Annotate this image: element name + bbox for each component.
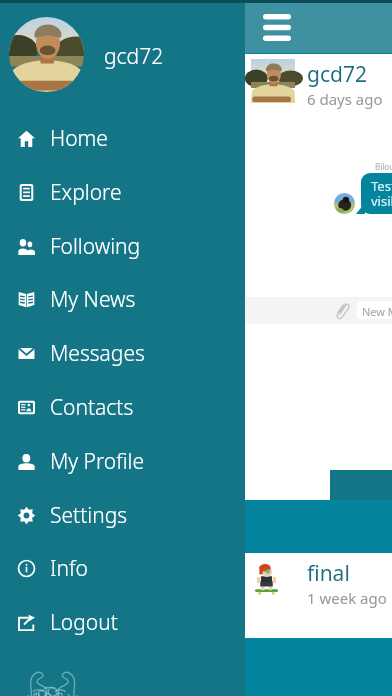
- button[interactable]: Open navigation menu: [256, 6, 298, 48]
- button[interactable]: Logout: [0, 596, 245, 648]
- staticText: Settings: [50, 501, 128, 530]
- button[interactable]: gcd72: [245, 54, 392, 500]
- staticText: gcd72: [104, 42, 164, 71]
- button[interactable]: New M: [357, 301, 392, 319]
- staticText: Following: [50, 232, 141, 261]
- staticText: New M: [362, 304, 392, 319]
- button[interactable]: Settings: [0, 489, 245, 541]
- staticText: Info: [50, 554, 88, 583]
- button[interactable]: Home: [0, 112, 245, 164]
- staticText: Explore: [50, 178, 122, 207]
- button[interactable]: My Profile: [0, 435, 245, 487]
- staticText: Bilou: [375, 161, 392, 172]
- staticText: Logout: [50, 608, 118, 637]
- button[interactable]: Contacts: [0, 381, 245, 433]
- button[interactable]: Info: [0, 542, 245, 594]
- staticText: gcd72: [307, 60, 367, 89]
- staticText: 6 days ago: [307, 89, 383, 109]
- button[interactable]: Explore: [0, 166, 245, 218]
- staticText: Contacts: [50, 393, 134, 422]
- button[interactable]: Following: [0, 220, 245, 272]
- staticText: Home: [50, 124, 108, 153]
- staticText: Test visib: [371, 177, 392, 210]
- button[interactable]: My News: [0, 273, 245, 325]
- button[interactable]: Attach file: [332, 300, 352, 320]
- button[interactable]: Messages: [0, 327, 245, 379]
- staticText: My News: [50, 285, 136, 314]
- staticText: My Profile: [50, 447, 145, 476]
- button[interactable]: final: [245, 553, 392, 638]
- staticText: final: [307, 559, 350, 588]
- staticText: 1 week ago: [307, 588, 387, 608]
- staticText: Messages: [50, 339, 145, 368]
- button[interactable]: gcd72: [0, 0, 245, 107]
